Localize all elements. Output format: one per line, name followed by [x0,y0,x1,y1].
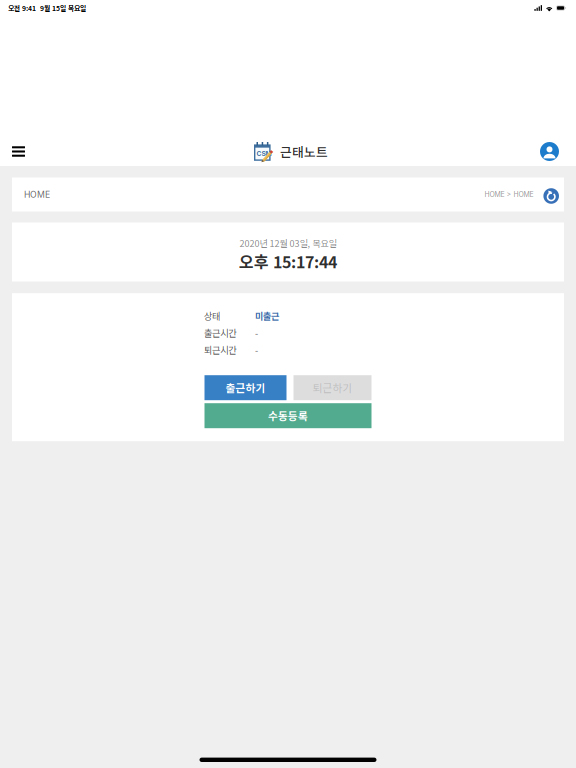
staticText: - [255,326,258,339]
button[interactable]: Account [535,136,564,166]
button[interactable]: 출근하기 [204,375,286,400]
staticText: 퇴근시간 [204,343,236,356]
button[interactable]: 퇴근하기 [293,375,371,400]
staticText: 오전 9:41 9월 15일 목요일 [8,3,86,13]
staticText: 미출근 [255,309,279,322]
staticText: CSM [256,149,271,158]
staticText: 상태 [204,309,220,322]
button[interactable]: Menu [6,136,31,166]
staticText: HOME [24,189,50,200]
staticText: 수동등록 [268,408,308,423]
button[interactable]: Refresh [543,185,559,204]
staticText: HOME > HOME [484,190,533,199]
staticText: 출근시간 [204,326,236,339]
staticText: 퇴근하기 [312,380,352,395]
staticText: 2020년 12월 03일, 목요일 [239,236,336,250]
staticText: 출근하기 [225,380,265,395]
staticText: 오후 15:17:44 [239,250,337,273]
staticText: 근태노트 [280,142,328,161]
button[interactable]: 수동등록 [204,403,371,428]
staticText: - [255,343,258,356]
